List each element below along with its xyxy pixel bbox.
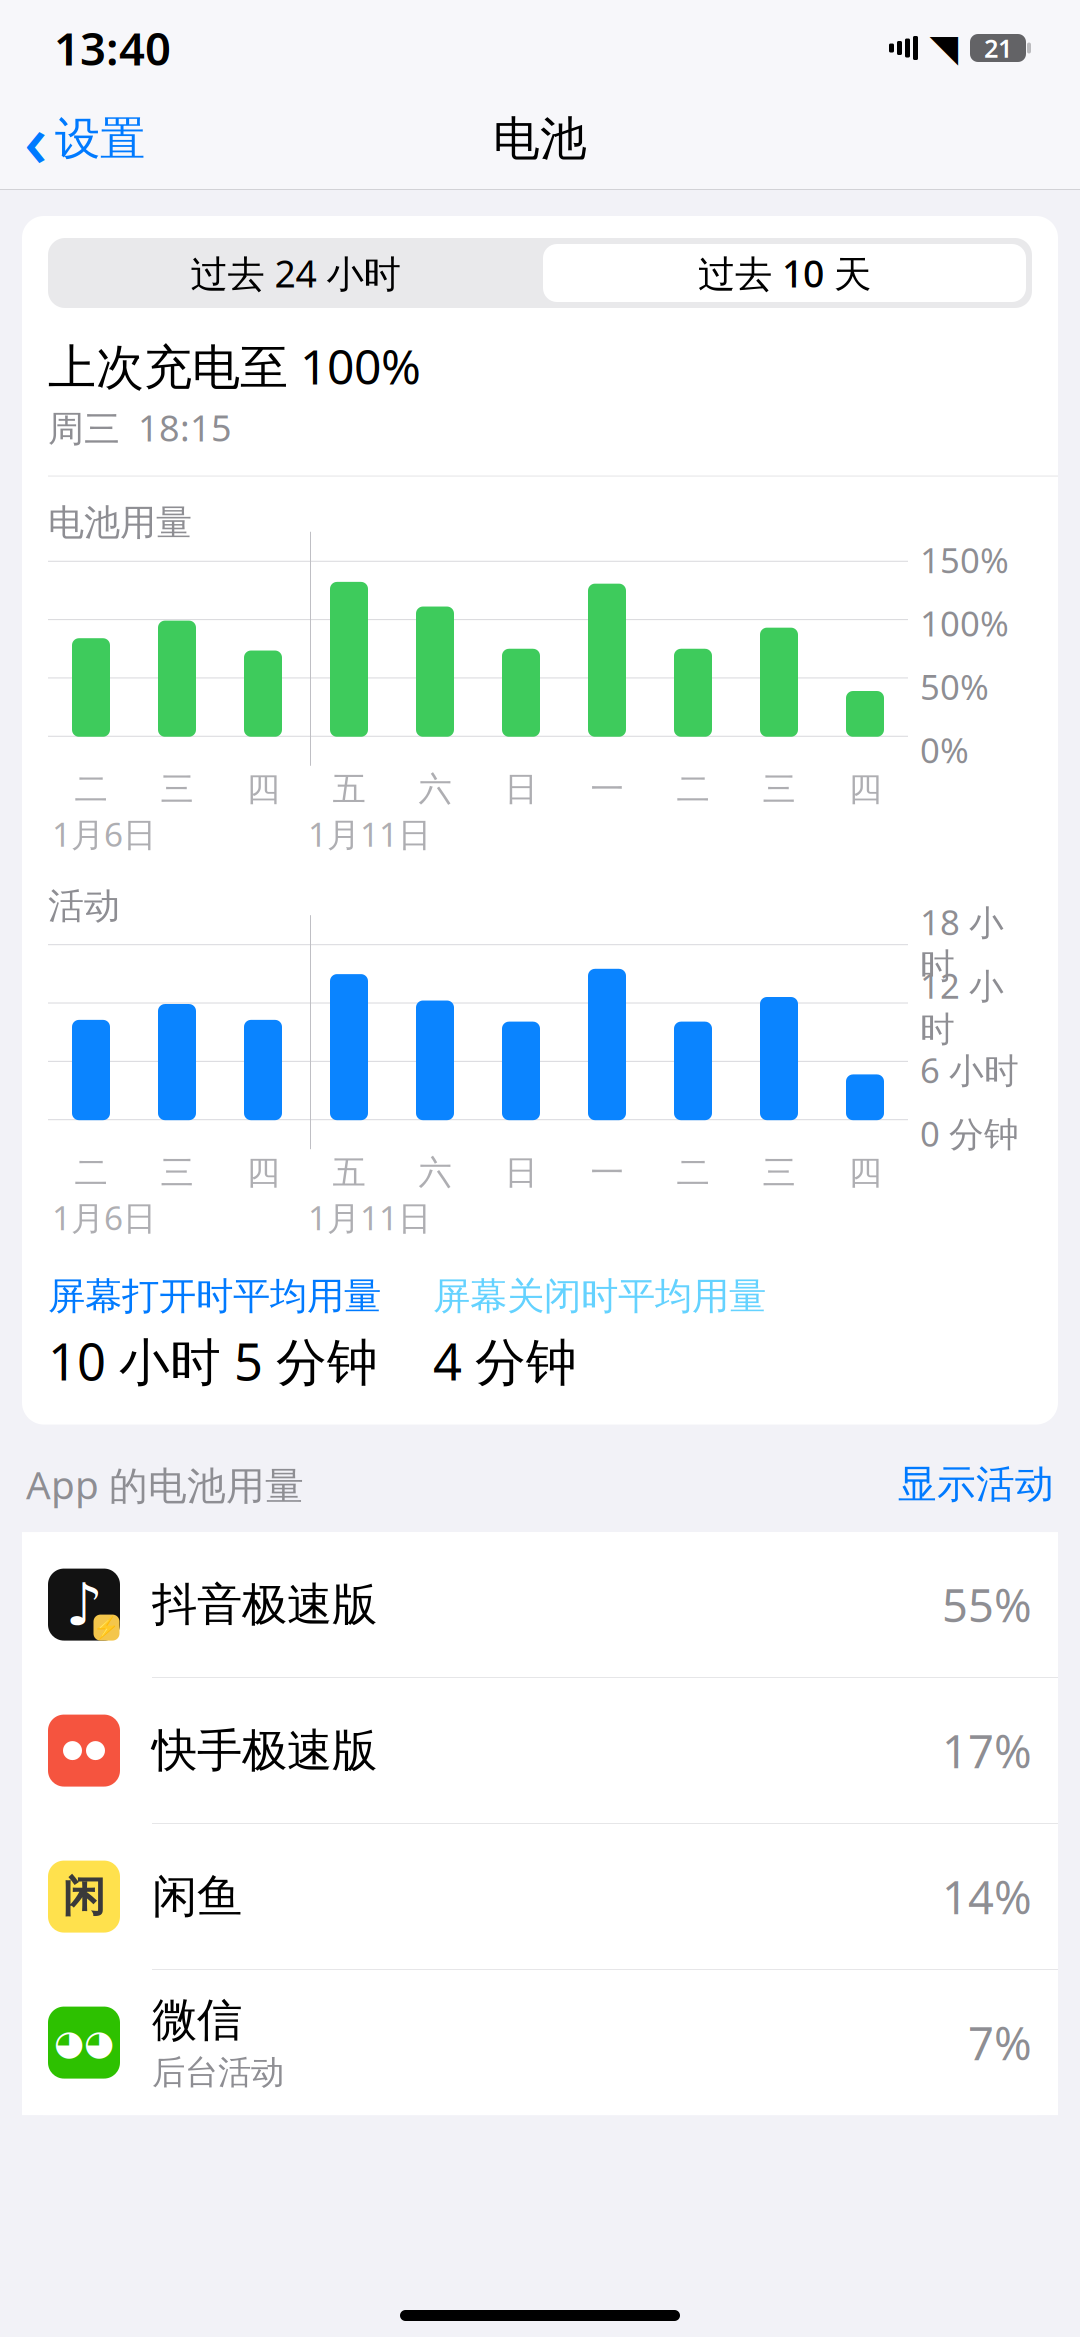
staticText: 微信	[152, 1992, 242, 2048]
staticText: App 的电池用量	[26, 1458, 304, 1510]
staticText: ◕◕	[54, 2023, 114, 2062]
staticText: ♪	[65, 1571, 102, 1638]
staticText: 17%	[942, 1720, 1032, 1781]
staticText: 13:40	[54, 18, 171, 78]
staticText: 过去 24 小时	[190, 248, 400, 298]
button[interactable]: ◕◕	[22, 1970, 1058, 2115]
staticText: 过去 10 天	[698, 248, 871, 298]
staticText: 四	[848, 769, 881, 810]
staticText: 抖音极速版	[152, 1577, 377, 1632]
staticText: 五	[332, 1152, 365, 1193]
staticText: 0 分钟	[920, 1110, 1019, 1156]
staticText: 三	[762, 1152, 795, 1193]
staticText: 14%	[942, 1866, 1032, 1927]
staticText: 后台活动	[152, 2052, 284, 2093]
staticText: 日	[504, 769, 537, 810]
button[interactable]: 过去 10 天	[543, 244, 1026, 302]
button[interactable]: ‹	[0, 104, 169, 174]
staticText: 二	[676, 769, 709, 810]
staticText: 7%	[968, 2012, 1032, 2073]
staticText: ◥	[929, 27, 958, 69]
staticText: 三	[160, 769, 193, 810]
staticText: 10 小时 5 分钟	[48, 1327, 378, 1395]
staticText: 二	[676, 1152, 709, 1193]
staticText: 六	[418, 769, 451, 810]
staticText: 100%	[920, 600, 1009, 646]
staticText: 显示活动	[898, 1461, 1054, 1508]
staticText: 周三 18:15	[48, 404, 232, 451]
staticText: 二	[74, 1152, 107, 1193]
staticText: 三	[160, 1152, 193, 1193]
staticText: 21	[984, 31, 1012, 65]
staticText: 屏幕关闭时平均用量	[433, 1273, 766, 1319]
button[interactable]: 闲	[22, 1824, 1058, 1970]
staticText: 四	[246, 769, 279, 810]
staticText: 二	[74, 769, 107, 810]
staticText: 闲	[62, 1870, 105, 1923]
staticText: 快手极速版	[152, 1723, 377, 1778]
staticText: 活动	[48, 884, 120, 928]
staticText: 电池用量	[48, 500, 192, 545]
staticText: 上次充电至 100%	[48, 334, 421, 398]
staticText: 1月6日	[52, 1195, 156, 1239]
staticText: 1月11日	[308, 812, 431, 856]
button[interactable]: 快手极速版	[22, 1678, 1058, 1824]
staticText: 4 分钟	[433, 1327, 577, 1395]
staticText: 四	[246, 1152, 279, 1193]
staticText: 18 小时	[920, 899, 1004, 987]
staticText: 电池	[493, 110, 587, 168]
staticText: 三	[762, 769, 795, 810]
staticText: 1月11日	[308, 1195, 431, 1239]
staticText: 一	[590, 769, 623, 810]
staticText: 6 小时	[920, 1047, 1019, 1093]
staticText: 闲鱼	[152, 1869, 242, 1924]
staticText: 四	[848, 1152, 881, 1193]
staticText: 12 小时	[920, 962, 1004, 1051]
button[interactable]: ♪	[22, 1532, 1058, 1678]
staticText: 日	[504, 1152, 537, 1193]
staticText: ⚡	[93, 1615, 120, 1640]
staticText: 50%	[920, 663, 989, 709]
staticText: ‹	[24, 91, 47, 187]
staticText: 1月6日	[52, 812, 156, 856]
staticText: 五	[332, 769, 365, 810]
button[interactable]: 显示活动	[898, 1461, 1054, 1508]
staticText: 屏幕打开时平均用量	[48, 1273, 381, 1319]
staticText: 150%	[920, 537, 1009, 583]
staticText: 设置	[55, 111, 145, 167]
staticText: 0%	[920, 727, 969, 773]
staticText: 六	[418, 1152, 451, 1193]
button[interactable]: 过去 24 小时	[51, 244, 540, 302]
staticText: 一	[590, 1152, 623, 1193]
staticText: 55%	[942, 1574, 1032, 1635]
